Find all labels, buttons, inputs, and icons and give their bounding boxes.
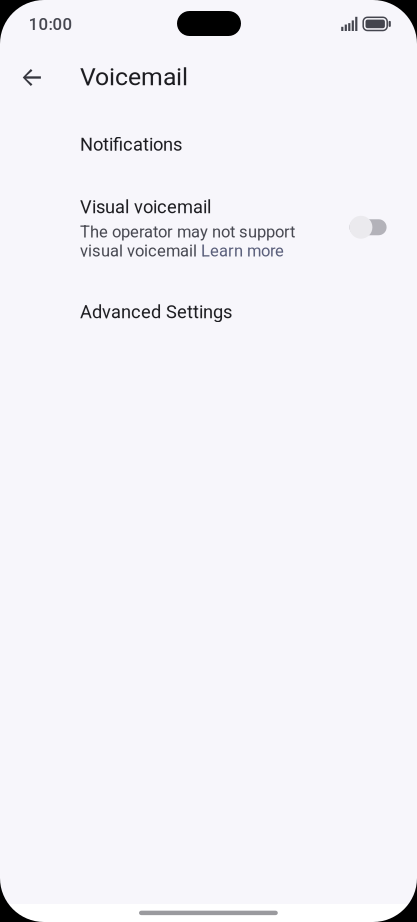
staticText: Visual voicemail — [80, 196, 211, 218]
staticText: The operator may not support — [80, 222, 295, 241]
button[interactable]: Visual voicemail — [0, 0, 417, 922]
staticText: Learn more — [201, 241, 284, 260]
button[interactable]: Back — [0, 0, 417, 922]
staticText: Voicemail — [80, 62, 188, 91]
staticText: Advanced Settings — [80, 301, 232, 323]
button[interactable]: Notifications — [0, 0, 417, 922]
button[interactable]: Advanced Settings — [0, 0, 417, 922]
staticText: visual voicemail — [80, 241, 201, 260]
staticText: Notifications — [80, 134, 182, 155]
staticText: 10:00 — [29, 14, 73, 34]
